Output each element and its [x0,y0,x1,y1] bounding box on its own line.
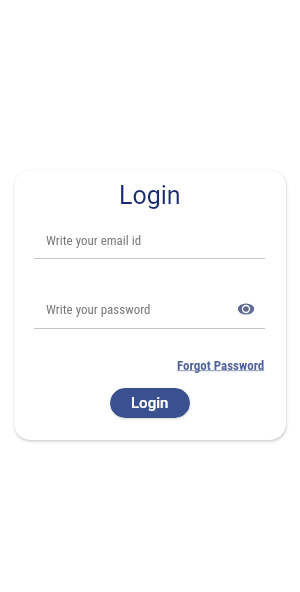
staticText: Forgot Password [177,358,265,373]
button[interactable]: Write your email id [46,227,142,253]
button[interactable]: Write your password [46,296,151,322]
button[interactable]: Login [110,388,190,418]
button[interactable]: Forgot Password [177,358,265,373]
button[interactable] [234,297,258,321]
staticText: Login [119,181,181,210]
staticText: Login [131,394,169,412]
staticText: Write your email id [46,233,142,248]
staticText: Write your password [46,302,151,317]
